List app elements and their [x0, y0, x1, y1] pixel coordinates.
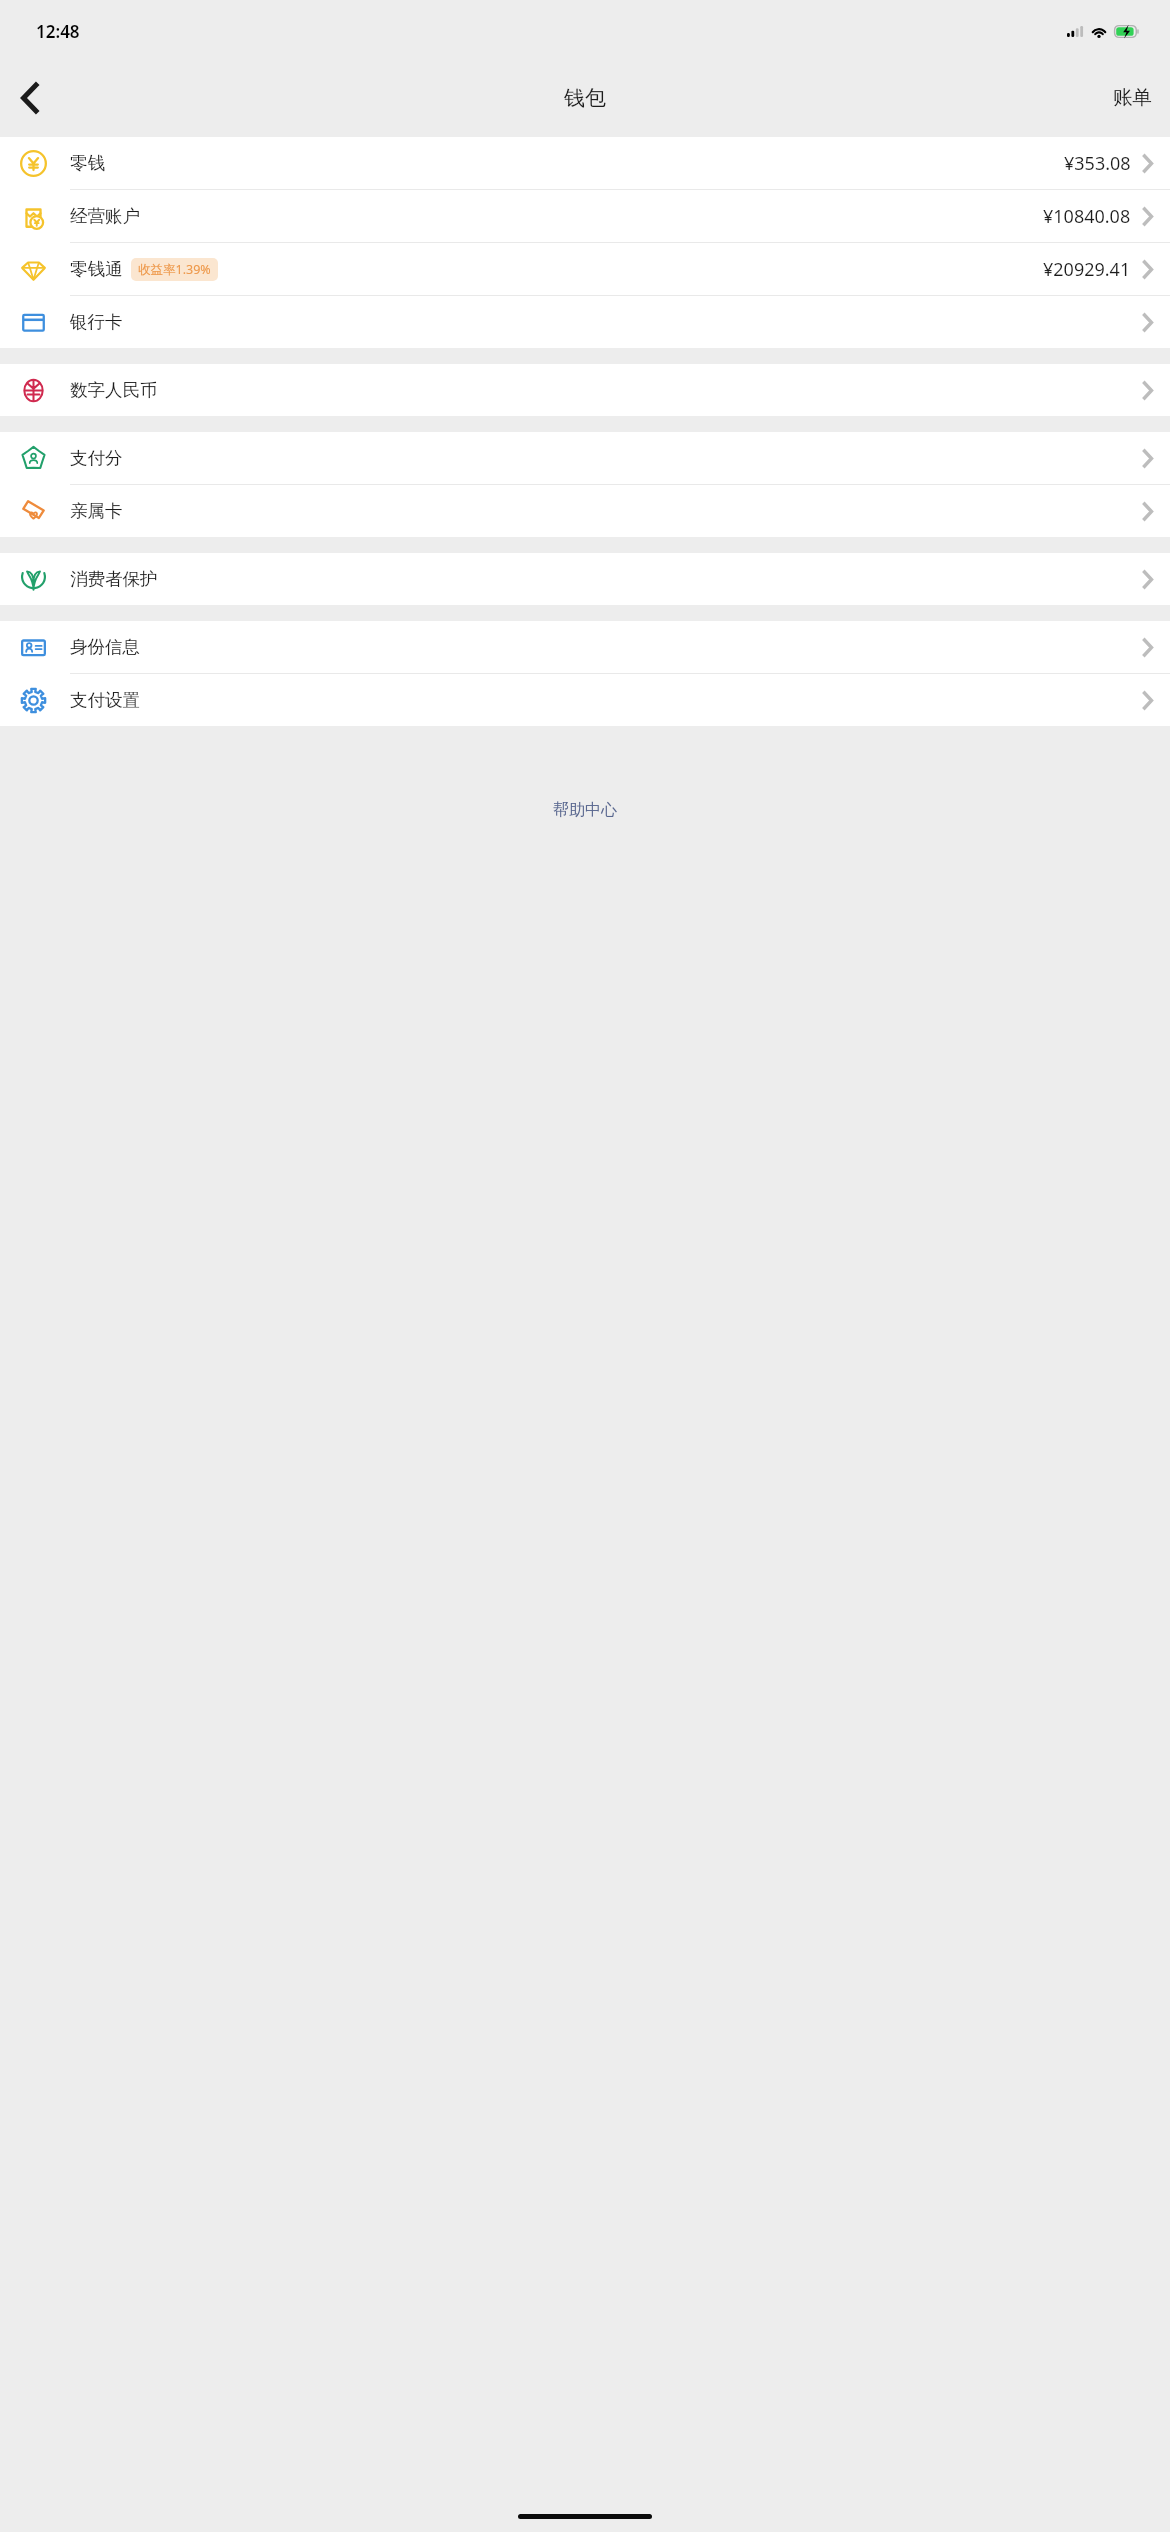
staticText: 数字人民币	[70, 379, 158, 401]
staticText: 零钱通	[70, 258, 123, 280]
button[interactable]: 数字人民币	[0, 364, 1170, 416]
button[interactable]: 零钱通	[0, 243, 1170, 296]
staticText: 账单	[1113, 85, 1152, 110]
button[interactable]: 银行卡	[0, 296, 1170, 348]
button[interactable]: 经营账户	[0, 190, 1170, 243]
button[interactable]: 账单	[1095, 73, 1170, 122]
button[interactable]: 支付分	[0, 432, 1170, 485]
staticText: 钱包	[564, 85, 606, 111]
staticText: 消费者保护	[70, 568, 158, 590]
staticText: 收益率1.39%	[138, 261, 211, 278]
button[interactable]: 支付设置	[0, 674, 1170, 726]
staticText: 身份信息	[70, 636, 140, 658]
button[interactable]: 身份信息	[0, 621, 1170, 674]
button[interactable]: 零钱	[0, 137, 1170, 190]
button[interactable]: 消费者保护	[0, 553, 1170, 605]
staticText: 亲属卡	[70, 500, 123, 522]
button[interactable]: 帮助中心	[531, 792, 639, 828]
staticText: 银行卡	[70, 311, 123, 333]
staticText: ¥353.08	[1064, 151, 1131, 176]
staticText: 支付分	[70, 447, 123, 469]
staticText: 帮助中心	[553, 800, 617, 820]
button[interactable]: 亲属卡	[0, 485, 1170, 537]
staticText: 零钱	[70, 152, 105, 174]
staticText: 经营账户	[70, 205, 140, 227]
staticText: 支付设置	[70, 689, 140, 711]
staticText: ¥10840.08	[1043, 204, 1131, 229]
button[interactable]: Back	[0, 69, 58, 127]
staticText: ¥20929.41	[1043, 257, 1131, 282]
staticText: 12:48	[36, 20, 80, 43]
